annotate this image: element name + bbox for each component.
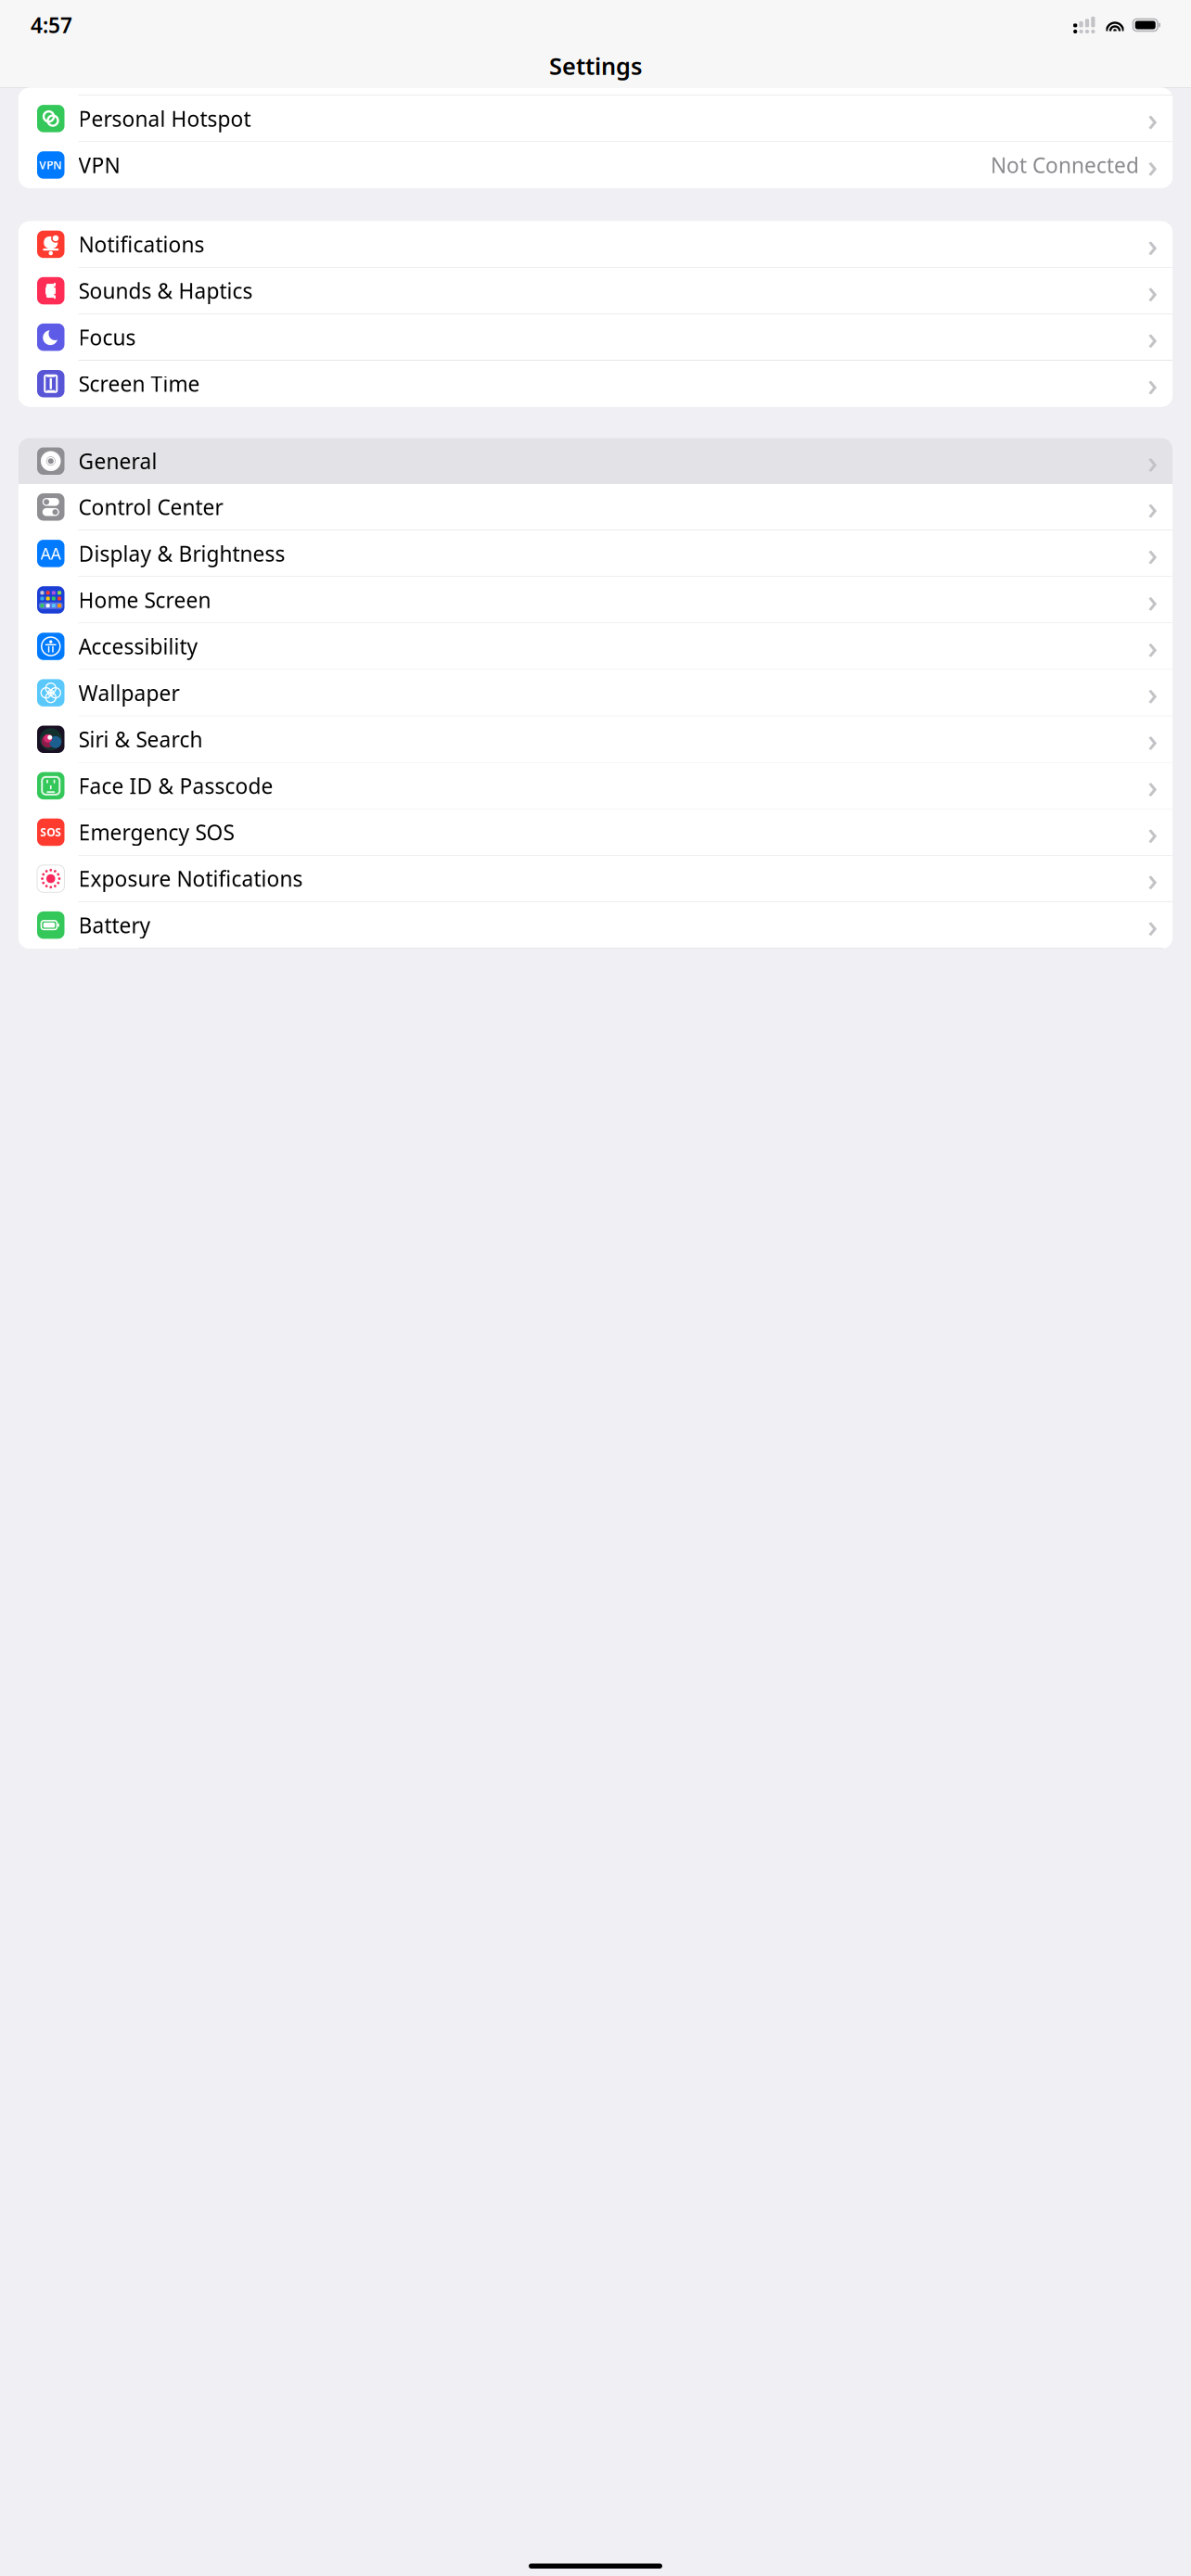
staticText: Siri & Search	[78, 725, 203, 753]
staticText: Wallpaper	[78, 679, 179, 707]
staticText: 4:57	[31, 11, 72, 39]
button[interactable]: Screen Time	[19, 361, 1172, 407]
button[interactable]: Focus	[19, 314, 1172, 360]
button[interactable]: General	[19, 438, 1172, 484]
staticText: Accessibility	[78, 632, 198, 660]
staticText: General	[78, 447, 157, 475]
staticText: Focus	[78, 323, 136, 351]
staticText: ›	[1147, 269, 1158, 312]
button[interactable]: Notifications	[19, 221, 1172, 267]
staticText: ›	[1147, 223, 1158, 266]
staticText: Settings	[549, 50, 642, 81]
button[interactable]: Personal Hotspot	[19, 96, 1172, 142]
staticText: ›	[1147, 579, 1158, 621]
staticText: ›	[1147, 857, 1158, 900]
button[interactable]: Exposure Notifications	[19, 856, 1172, 902]
staticText: VPN	[78, 151, 120, 179]
staticText: Notifications	[78, 230, 205, 258]
staticText: Battery	[78, 911, 151, 939]
button[interactable]: Control Center	[19, 484, 1172, 530]
staticText: ›	[1147, 904, 1158, 946]
staticText: ›	[1147, 625, 1158, 668]
staticText: VPN	[39, 158, 62, 172]
staticText: ›	[1147, 144, 1158, 186]
button[interactable]: Home Screen	[19, 577, 1172, 623]
staticText: AA	[41, 543, 61, 564]
staticText: Personal Hotspot	[78, 105, 251, 133]
staticText: ›	[1147, 316, 1158, 358]
button[interactable]: VPN	[19, 142, 1172, 188]
button[interactable]: Accessibility	[19, 623, 1172, 669]
button[interactable]: Face ID & Passcode	[19, 763, 1172, 809]
button[interactable]: Wallpaper	[19, 670, 1172, 716]
button[interactable]: AA	[19, 531, 1172, 576]
button[interactable]: Battery	[19, 902, 1172, 948]
staticText: ›	[1147, 718, 1158, 761]
button[interactable]: Siri & Search	[19, 716, 1172, 762]
staticText: ›	[1147, 486, 1158, 528]
staticText: Not Connected	[991, 151, 1139, 179]
staticText: ›	[1147, 362, 1158, 405]
staticText: ›	[1147, 97, 1158, 140]
staticText: Sounds & Haptics	[78, 277, 253, 305]
staticText: SOS	[40, 825, 61, 840]
staticText: Face ID & Passcode	[78, 772, 273, 800]
button[interactable]: SOS	[19, 809, 1172, 855]
staticText: Display & Brightness	[78, 539, 285, 567]
button[interactable]: Sounds & Haptics	[19, 268, 1172, 314]
staticText: Control Center	[78, 493, 223, 521]
staticText: ›	[1147, 811, 1158, 853]
staticText: ›	[1147, 532, 1158, 575]
staticText: ›	[1147, 671, 1158, 714]
staticText: ›	[1147, 764, 1158, 807]
staticText: Emergency SOS	[78, 818, 234, 846]
staticText: Exposure Notifications	[78, 865, 303, 893]
staticText: Home Screen	[78, 586, 211, 614]
staticText: Screen Time	[78, 370, 200, 398]
staticText: ›	[1147, 440, 1158, 482]
